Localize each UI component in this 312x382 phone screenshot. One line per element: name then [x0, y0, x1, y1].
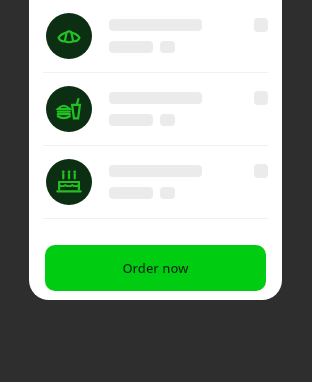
button[interactable]: Croissant, bakery item [29, 0, 282, 72]
staticText: Order now [122, 259, 189, 277]
button[interactable]: Fast food item [29, 73, 282, 145]
other: Cake, dessert item [46, 159, 92, 205]
button[interactable]: Cake, dessert item [29, 146, 282, 218]
other: Fast food item [46, 86, 92, 132]
button[interactable]: Order now [45, 245, 266, 291]
other: Croissant, bakery item [46, 13, 92, 59]
